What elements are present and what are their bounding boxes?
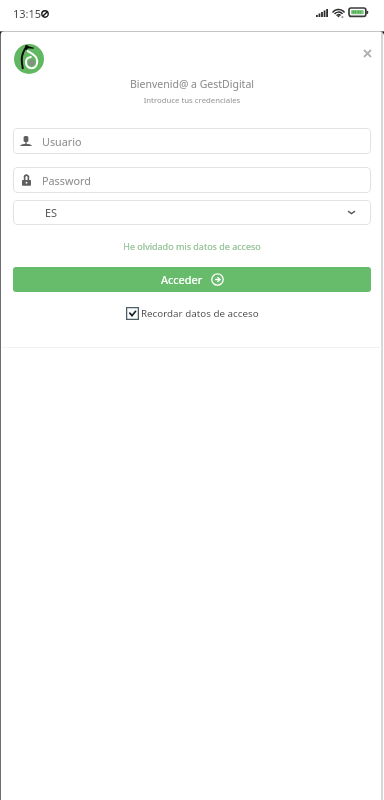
button[interactable]: Usuario [13,128,371,154]
staticText: Bienvenid@ a GestDigital [0,77,384,91]
staticText: Recordar datos de acceso [141,307,259,320]
button[interactable]: Recordar datos de acceso [126,307,259,320]
staticText: Acceder [161,272,203,287]
button[interactable]: Acceder [13,267,371,292]
button[interactable]: Password [13,167,371,193]
staticText: Introduce tus credenciales [0,95,384,106]
staticText: Usuario [42,134,82,149]
button[interactable]: ES [13,200,371,225]
staticText: 13:15 [13,6,42,21]
button[interactable]: Cerrar [357,43,377,63]
staticText: Password [42,173,91,188]
staticText: ES [45,205,58,220]
button[interactable]: He olvidado mis datos de acceso [0,240,384,252]
